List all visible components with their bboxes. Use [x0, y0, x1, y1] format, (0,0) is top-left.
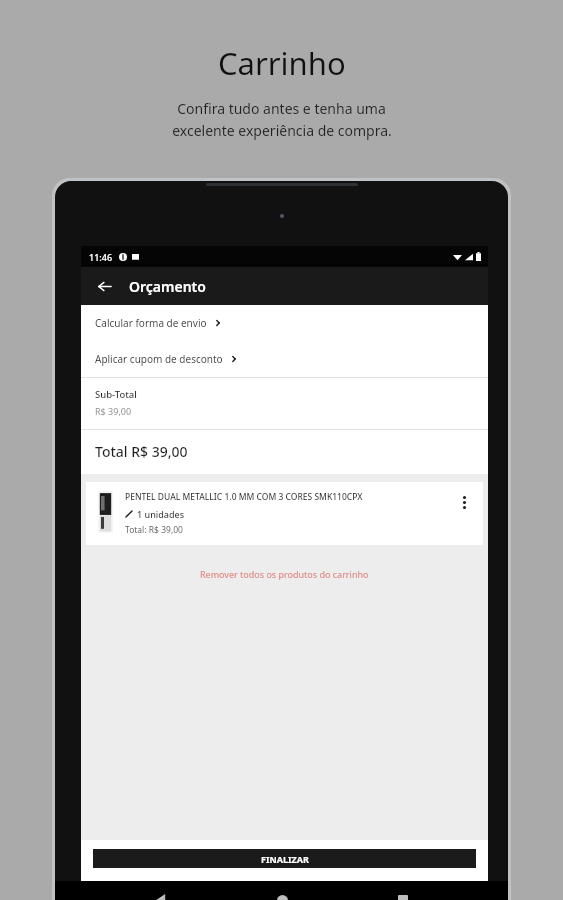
staticText: Total: R$ 39,00: [125, 524, 183, 536]
staticText: R$ 39,00: [95, 405, 132, 417]
staticText: Remover todos os produtos do carrinho: [200, 568, 369, 580]
staticText: Sub-Total: [95, 388, 137, 401]
staticText: 11:46: [89, 251, 113, 263]
other: Home: [277, 895, 288, 900]
staticText: PENTEL DUAL METALLIC 1.0 MM COM 3 CORES …: [125, 491, 363, 503]
staticText: 1 unidades: [137, 508, 185, 520]
button[interactable]: Remover todos os produtos do carrinho: [81, 568, 488, 580]
staticText: Total R$ 39,00: [95, 442, 188, 461]
staticText: Aplicar cupom de desconto: [95, 352, 223, 366]
button[interactable]: Categorias: [182, 877, 284, 900]
button[interactable]: FINALIZAR: [93, 849, 476, 868]
button[interactable]: Calcular forma de envio: [81, 305, 488, 341]
staticText: Carrinho: [218, 42, 346, 84]
button[interactable]: Aplicar cupom de desconto: [81, 341, 488, 377]
other: Recents: [398, 895, 408, 900]
staticText: excelente experiência de compra.: [172, 121, 392, 140]
button[interactable]: Início: [81, 877, 182, 900]
staticText: Confira tudo antes e tenha uma: [177, 99, 386, 118]
button[interactable]: 1: [284, 877, 386, 900]
staticText: FINALIZAR: [261, 853, 309, 865]
button[interactable]: Conta: [386, 877, 488, 900]
staticText: Calcular forma de envio: [95, 316, 207, 330]
button[interactable]: PENTEL DUAL METALLIC 1.0 MM COM 3 CORES …: [86, 482, 483, 545]
other: Back: [155, 894, 167, 900]
button[interactable]: Back: [87, 269, 121, 303]
button[interactable]: Opções do produto: [453, 491, 475, 513]
staticText: Orçamento: [129, 277, 206, 296]
